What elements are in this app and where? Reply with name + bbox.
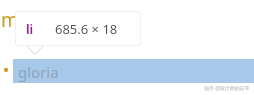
staticText: gloria bbox=[18, 62, 59, 82]
staticText: 知乎 @设计师的日常 bbox=[204, 85, 250, 92]
button[interactable]: gloria bbox=[13, 59, 254, 83]
button[interactable]: Element size tooltip bbox=[15, 11, 141, 46]
staticText: 685.6 × 18 bbox=[55, 20, 118, 38]
staticText: li bbox=[26, 21, 34, 37]
staticText: m bbox=[1, 7, 19, 33]
